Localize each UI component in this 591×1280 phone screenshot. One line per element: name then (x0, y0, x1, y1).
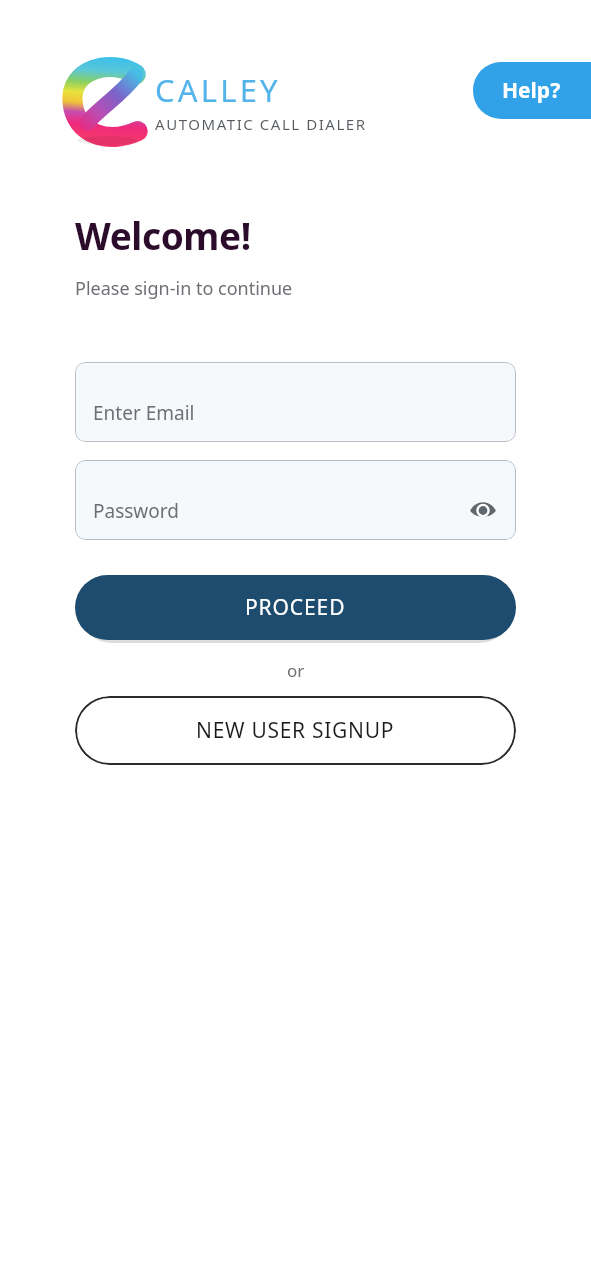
staticText: or (287, 659, 305, 682)
staticText: Help? (502, 76, 561, 105)
staticText: CALLEY (155, 69, 281, 111)
staticText: Please sign-in to continue (75, 276, 293, 301)
button[interactable]: Password (75, 460, 516, 540)
staticText: Welcome! (75, 210, 251, 260)
button[interactable]: Enter Email (75, 362, 516, 442)
staticText: Enter Email (93, 400, 195, 426)
button[interactable]: PROCEED (75, 575, 516, 640)
button[interactable]: NEW USER SIGNUP (75, 696, 516, 765)
staticText: NEW USER SIGNUP (196, 716, 395, 745)
staticText: AUTOMATIC CALL DIALER (155, 114, 367, 134)
button[interactable]: Help? (473, 62, 591, 119)
button[interactable]: Show password (466, 493, 500, 527)
staticText: Password (93, 498, 179, 524)
staticText: PROCEED (245, 593, 346, 622)
